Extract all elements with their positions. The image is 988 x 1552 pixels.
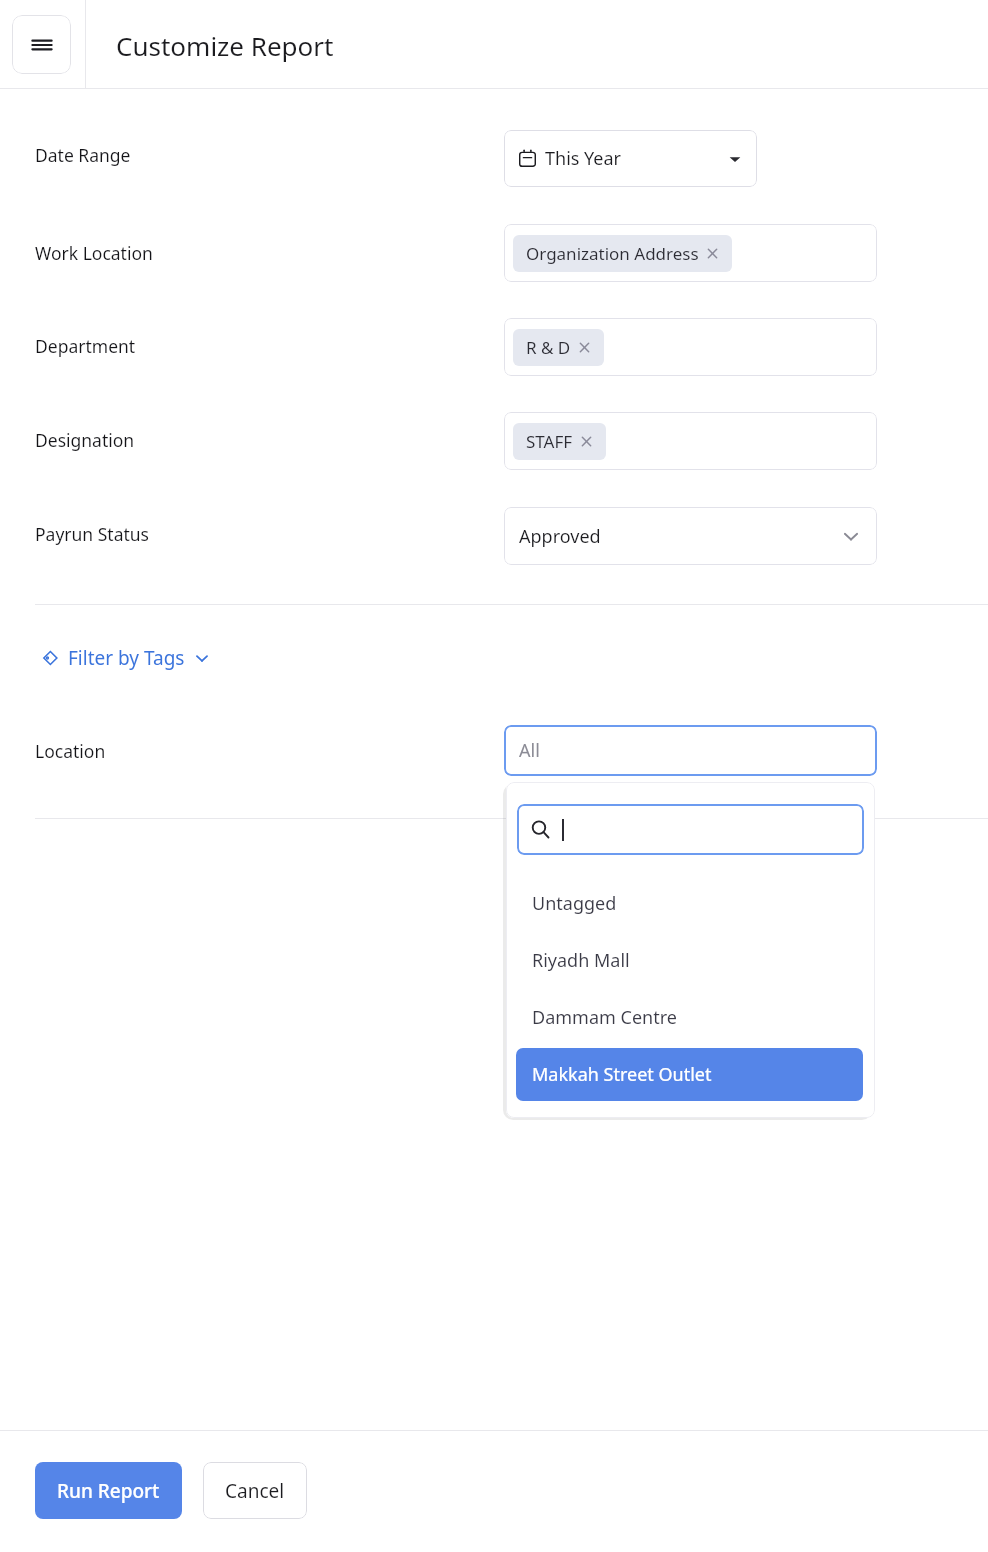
staticText: This Year: [545, 146, 622, 171]
staticText: R & D: [526, 336, 571, 359]
staticText: Department: [35, 334, 136, 358]
button[interactable]: All: [504, 725, 877, 776]
button[interactable]: Approved: [504, 507, 877, 565]
staticText: Location: [35, 739, 106, 763]
button[interactable]: R & D: [504, 318, 877, 376]
button[interactable]: [517, 804, 864, 855]
button[interactable]: Run Report: [35, 1462, 182, 1519]
staticText: STAFF: [526, 430, 573, 453]
staticText: Designation: [35, 428, 135, 452]
staticText: Riyadh Mall: [532, 948, 630, 973]
staticText: Dammam Centre: [532, 1005, 677, 1030]
button[interactable]: Cancel: [203, 1462, 307, 1519]
button[interactable]: Dammam Centre: [516, 991, 863, 1044]
staticText: Run Report: [57, 1478, 160, 1504]
staticText: Filter by Tags: [68, 645, 185, 671]
staticText: Approved: [519, 524, 601, 549]
button[interactable]: Makkah Street Outlet: [516, 1048, 863, 1101]
button[interactable]: Filter by Tags: [35, 641, 217, 675]
staticText: Makkah Street Outlet: [532, 1062, 712, 1087]
button[interactable]: STAFF: [513, 423, 606, 460]
staticText: Cancel: [225, 1478, 285, 1504]
staticText: Payrun Status: [35, 522, 149, 546]
button[interactable]: Organization Address: [513, 235, 732, 272]
staticText: All: [519, 738, 540, 763]
staticText: Customize Report: [116, 28, 334, 63]
button[interactable]: R & D: [513, 329, 604, 366]
button[interactable]: This Year: [504, 130, 757, 187]
button[interactable]: Riyadh Mall: [516, 934, 863, 987]
button[interactable]: STAFF: [504, 412, 877, 470]
button[interactable]: Organization Address: [504, 224, 877, 282]
button[interactable]: Menu: [12, 15, 71, 74]
button[interactable]: Untagged: [516, 877, 863, 930]
staticText: Untagged: [532, 891, 617, 916]
staticText: Date Range: [35, 143, 131, 167]
staticText: Work Location: [35, 241, 153, 265]
staticText: Organization Address: [526, 242, 699, 265]
